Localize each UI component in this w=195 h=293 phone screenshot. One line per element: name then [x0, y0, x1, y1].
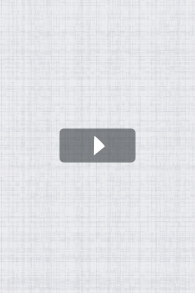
- button[interactable]: Play: [59, 128, 135, 162]
